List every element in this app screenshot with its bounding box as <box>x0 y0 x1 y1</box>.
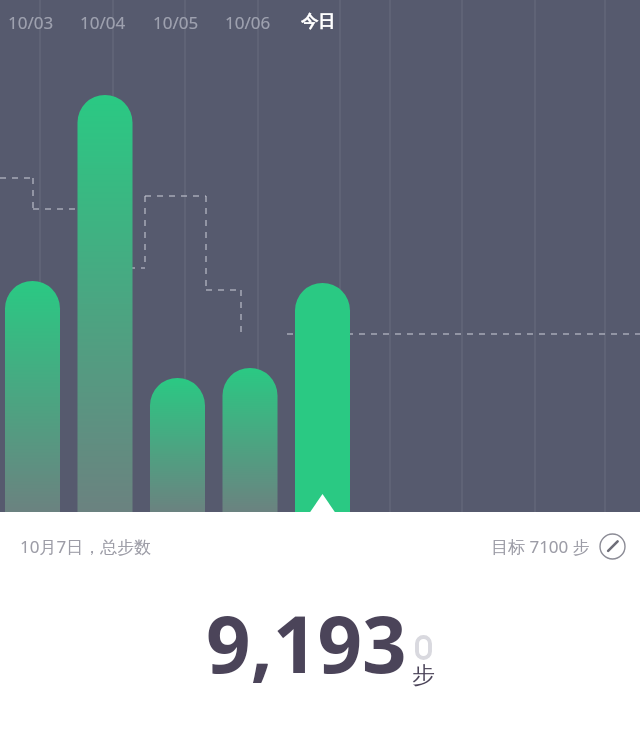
button[interactable]: 目标 7100 步 <box>491 527 626 566</box>
staticText: 今日 <box>301 11 335 32</box>
staticText: 目标 7100 步 <box>491 535 590 558</box>
staticText: 10月7日，总步数 <box>20 535 152 558</box>
staticText: 9,193 <box>206 590 407 696</box>
staticText: 10/03 <box>8 11 54 34</box>
staticText: 10/04 <box>80 11 126 34</box>
button[interactable]: Edit step goal <box>599 533 626 560</box>
staticText: 10/05 <box>153 11 199 34</box>
staticText: 10/06 <box>225 11 271 34</box>
staticText: 步 <box>412 661 435 690</box>
